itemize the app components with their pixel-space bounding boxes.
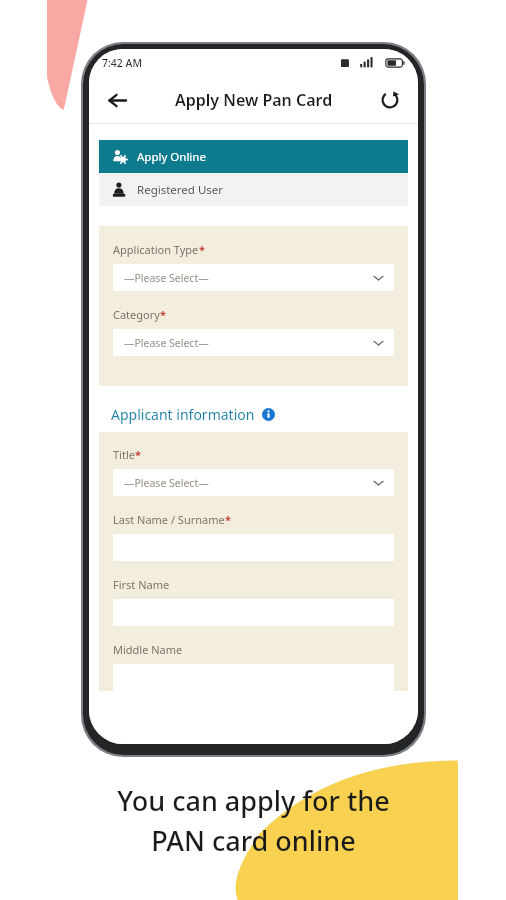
staticText: Category <box>113 307 160 322</box>
button[interactable]: —Please Select— <box>113 264 394 291</box>
staticText: Last Name / Surname <box>113 512 225 527</box>
staticText: —Please Select— <box>124 271 209 285</box>
staticText: * <box>135 447 141 462</box>
staticText: Application Type <box>113 242 199 257</box>
staticText: PAN card online <box>151 822 356 859</box>
staticText: You can apply for the <box>117 782 390 819</box>
button[interactable]: Registered User <box>99 173 408 206</box>
staticText: Apply New Pan Card <box>175 89 333 111</box>
staticText: Middle Name <box>113 642 183 657</box>
staticText: Applicant information <box>111 405 255 424</box>
button[interactable]: Back <box>97 80 137 120</box>
button[interactable]: —Please Select— <box>113 469 394 496</box>
staticText: Title <box>113 447 135 462</box>
staticText: —Please Select— <box>124 336 209 350</box>
staticText: —Please Select— <box>124 476 209 490</box>
staticText: * <box>199 242 205 257</box>
button[interactable]: —Please Select— <box>113 329 394 356</box>
staticText: 7:42 AM <box>102 56 143 70</box>
button[interactable]: Refresh <box>370 80 410 120</box>
staticText: * <box>225 512 231 527</box>
staticText: Apply Online <box>137 149 206 165</box>
staticText: * <box>160 307 166 322</box>
staticText: Registered User <box>137 182 224 198</box>
button[interactable]: Information <box>262 408 275 421</box>
staticText: First Name <box>113 577 170 592</box>
button[interactable]: Apply Online <box>99 140 408 173</box>
